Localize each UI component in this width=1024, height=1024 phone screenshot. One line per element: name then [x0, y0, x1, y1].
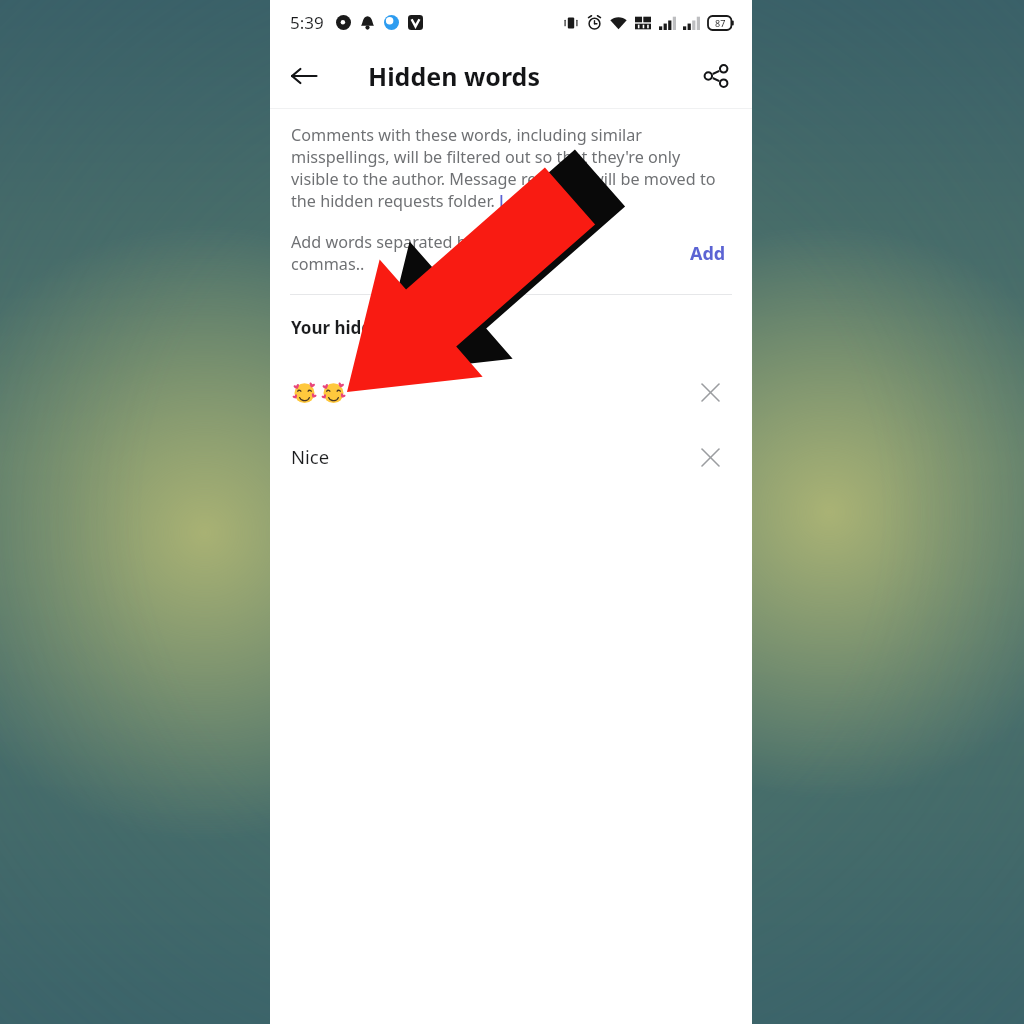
- staticText: Your hidden words: [291, 316, 450, 339]
- button[interactable]: Add: [684, 237, 732, 270]
- staticText: Nice: [291, 444, 330, 469]
- staticText: Comments with these words, including sim…: [291, 124, 730, 212]
- button[interactable]: Nice: [270, 424, 752, 489]
- button[interactable]: Back: [280, 52, 328, 100]
- button[interactable]: Remove word: [688, 435, 732, 479]
- button[interactable]: Remove word: [688, 370, 732, 414]
- button[interactable]: Share: [692, 52, 740, 100]
- staticText: Add: [690, 241, 726, 266]
- staticText: Add words separated by commas..: [291, 231, 684, 275]
- staticText: Hidden words: [368, 59, 540, 93]
- staticText: 5:39: [290, 11, 324, 34]
- button[interactable]: Remove word: [270, 359, 752, 424]
- staticText: 87: [715, 17, 726, 29]
